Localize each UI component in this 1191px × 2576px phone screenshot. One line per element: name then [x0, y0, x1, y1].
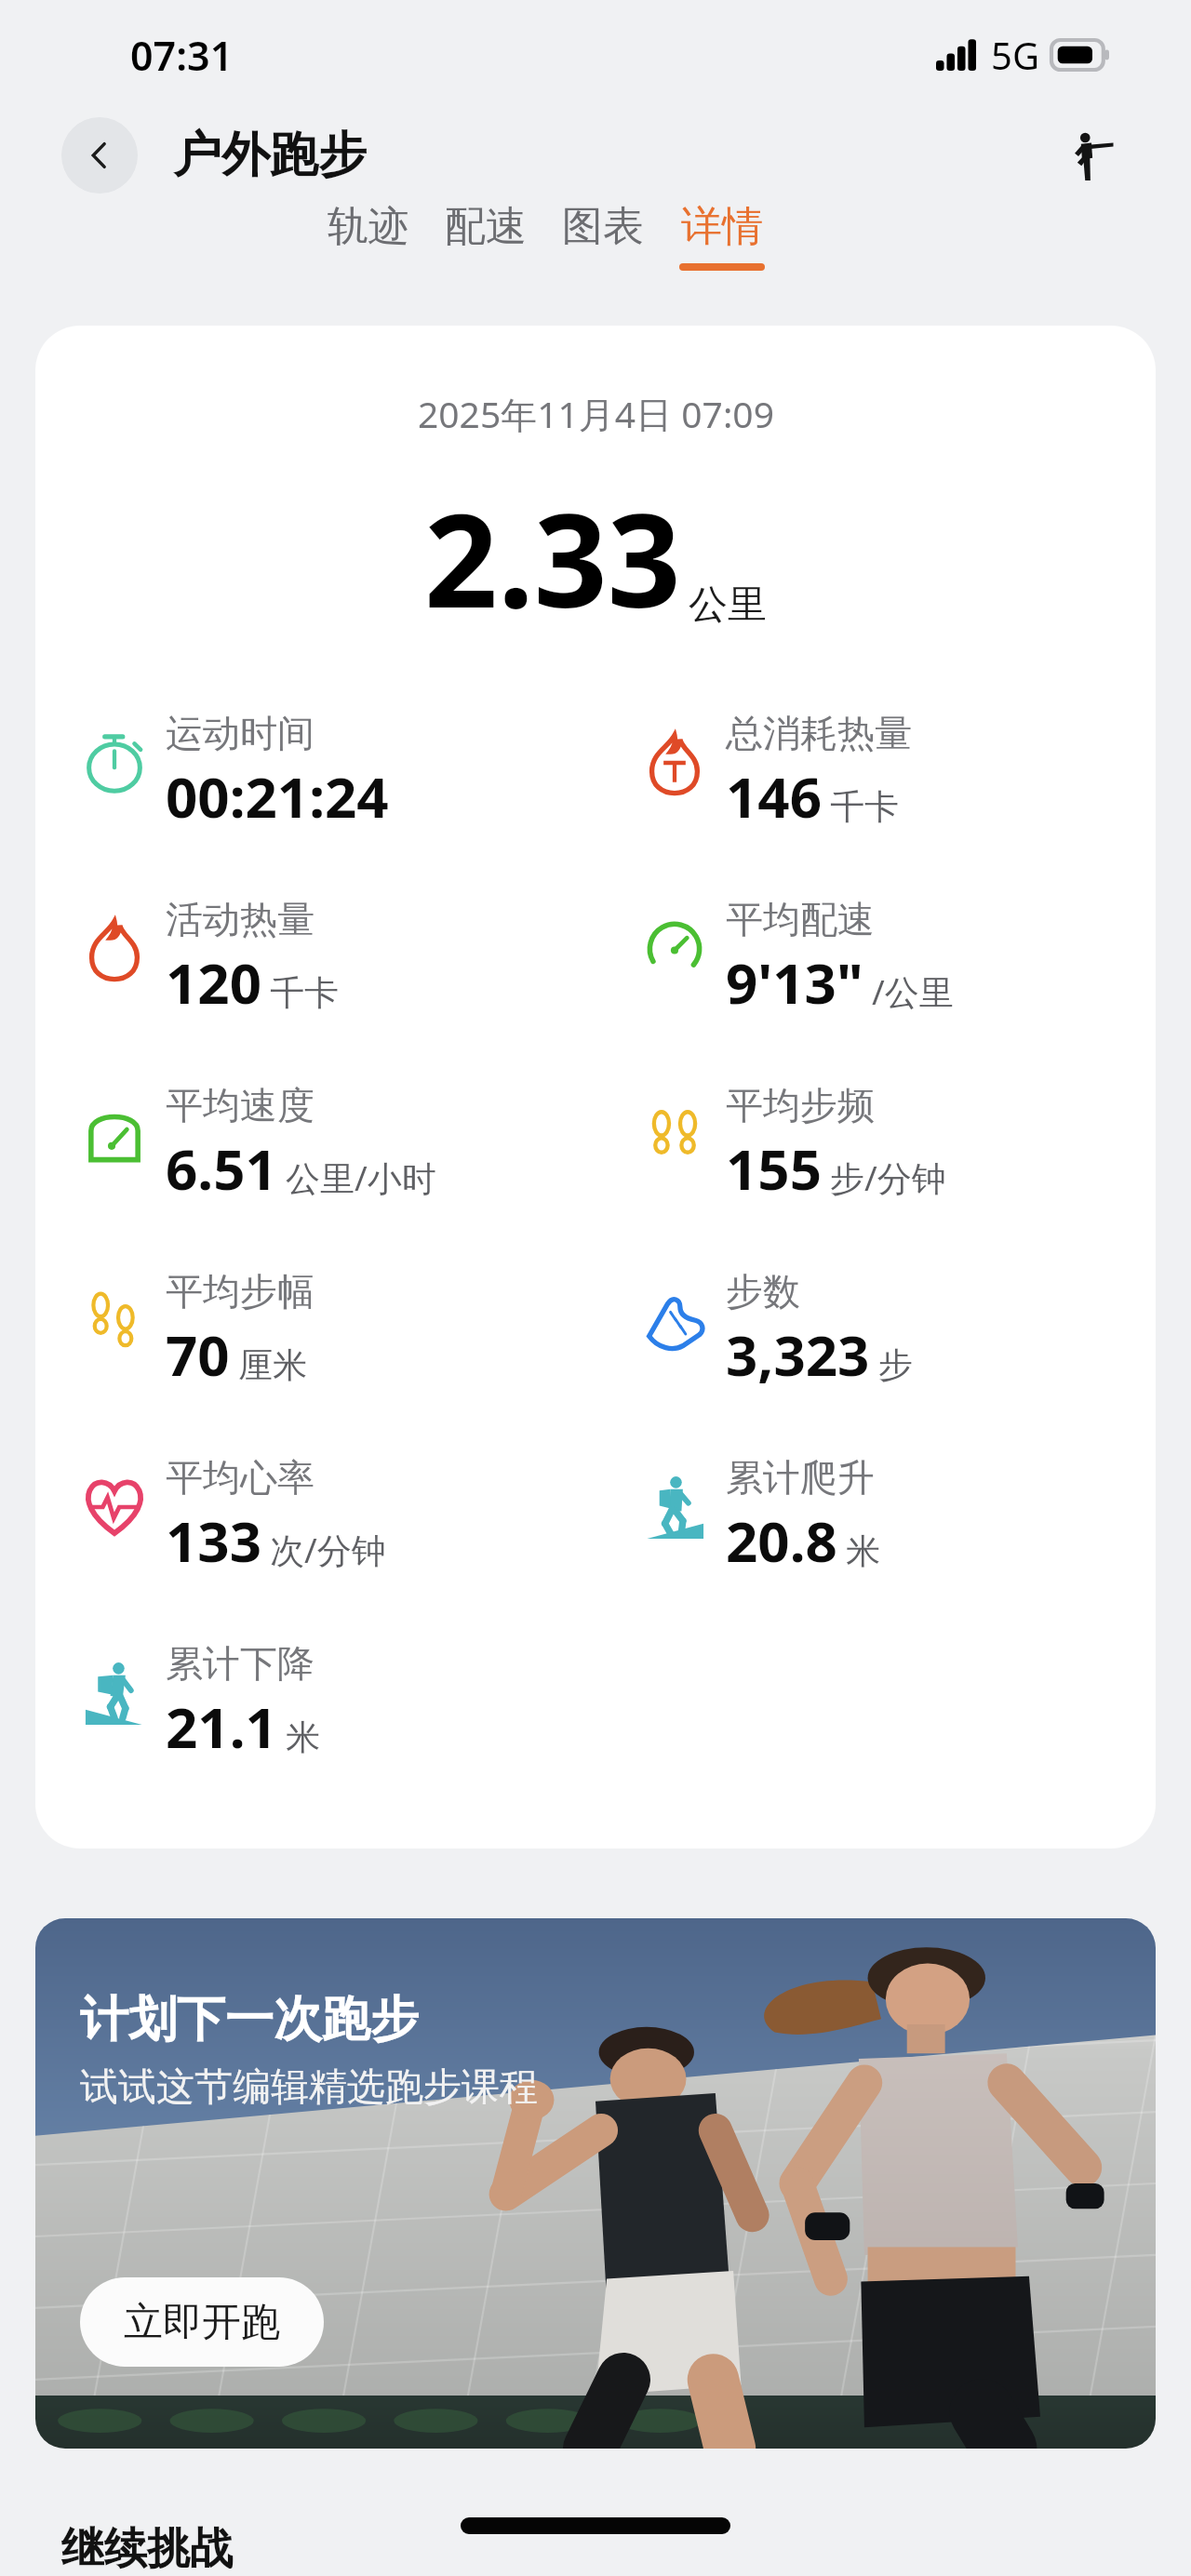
button[interactable]: 详情 — [679, 201, 765, 271]
staticText: 00:21:24 — [166, 758, 389, 834]
button[interactable]: 运动时间 — [35, 693, 595, 879]
button[interactable]: 轨迹 — [328, 201, 409, 263]
staticText: 累计爬升 — [726, 1454, 875, 1501]
staticText: 立即开跑 — [124, 2298, 280, 2347]
staticText: 运动时间 — [166, 710, 314, 756]
staticText: 米 — [286, 1715, 320, 1759]
staticText: 155 — [726, 1130, 822, 1207]
button[interactable]: 图表 — [562, 201, 644, 263]
staticText: 平均配速 — [726, 896, 875, 942]
staticText: 平均步幅 — [166, 1268, 314, 1315]
button[interactable]: 计划下一次跑步 — [35, 1918, 1156, 2449]
staticText: 计划下一次跑步 — [80, 1989, 419, 2050]
staticText: 次/分钟 — [270, 1526, 386, 1573]
staticText: 146 — [726, 758, 822, 834]
button[interactable]: 平均配速 — [595, 879, 1156, 1065]
staticText: 累计下降 — [166, 1640, 314, 1687]
staticText: 详情 — [681, 201, 763, 252]
button[interactable]: 配速 — [445, 201, 527, 263]
button[interactable]: Running activity — [1059, 123, 1124, 188]
button[interactable]: 平均步幅 — [35, 1251, 595, 1437]
staticText: 07:31 — [130, 28, 234, 83]
staticText: 千卡 — [270, 971, 339, 1015]
staticText: 千卡 — [830, 785, 899, 829]
staticText: 总消耗热量 — [726, 710, 912, 756]
staticText: 6.51 — [166, 1130, 277, 1207]
staticText: 平均心率 — [166, 1454, 314, 1501]
staticText: 3,323 — [726, 1316, 870, 1393]
staticText: 133 — [166, 1502, 261, 1579]
staticText: 公里 — [689, 581, 767, 630]
staticText: 70 — [166, 1316, 230, 1393]
staticText: 21.1 — [166, 1688, 277, 1765]
staticText: 平均步频 — [726, 1082, 875, 1128]
button[interactable]: 累计下降 — [35, 1623, 595, 1809]
staticText: 120 — [166, 944, 261, 1021]
staticText: 9'13" — [726, 944, 863, 1021]
button[interactable]: 累计爬升 — [595, 1437, 1156, 1623]
button[interactable]: 步数 — [595, 1251, 1156, 1437]
button[interactable]: 总消耗热量 — [595, 693, 1156, 879]
button[interactable]: 活动热量 — [35, 879, 595, 1065]
staticText: 试试这节编辑精选跑步课程 — [80, 2063, 538, 2112]
staticText: 活动热量 — [166, 896, 314, 942]
staticText: 步数 — [726, 1268, 800, 1315]
button[interactable]: 立即开跑 — [80, 2277, 324, 2367]
button[interactable]: 平均速度 — [35, 1065, 595, 1251]
staticText: 配速 — [445, 201, 527, 252]
button[interactable]: 平均心率 — [35, 1437, 595, 1623]
button[interactable]: 平均步频 — [595, 1065, 1156, 1251]
staticText: 图表 — [562, 201, 644, 252]
staticText: 20.8 — [726, 1502, 837, 1579]
staticText: /公里 — [872, 968, 954, 1015]
staticText: 2.33 — [424, 470, 681, 645]
staticText: 继续挑战 — [61, 2522, 233, 2576]
staticText: 2025年11月4日 07:09 — [418, 389, 774, 438]
button[interactable]: Back — [61, 117, 138, 194]
staticText: 米 — [846, 1529, 880, 1573]
staticText: 轨迹 — [328, 201, 409, 252]
staticText: 步 — [878, 1343, 913, 1387]
staticText: 厘米 — [238, 1343, 307, 1387]
staticText: 公里/小时 — [286, 1154, 436, 1201]
staticText: 5G — [991, 30, 1039, 80]
staticText: 户外跑步 — [173, 125, 367, 186]
staticText: 步/分钟 — [830, 1154, 946, 1201]
staticText: 平均速度 — [166, 1082, 314, 1128]
